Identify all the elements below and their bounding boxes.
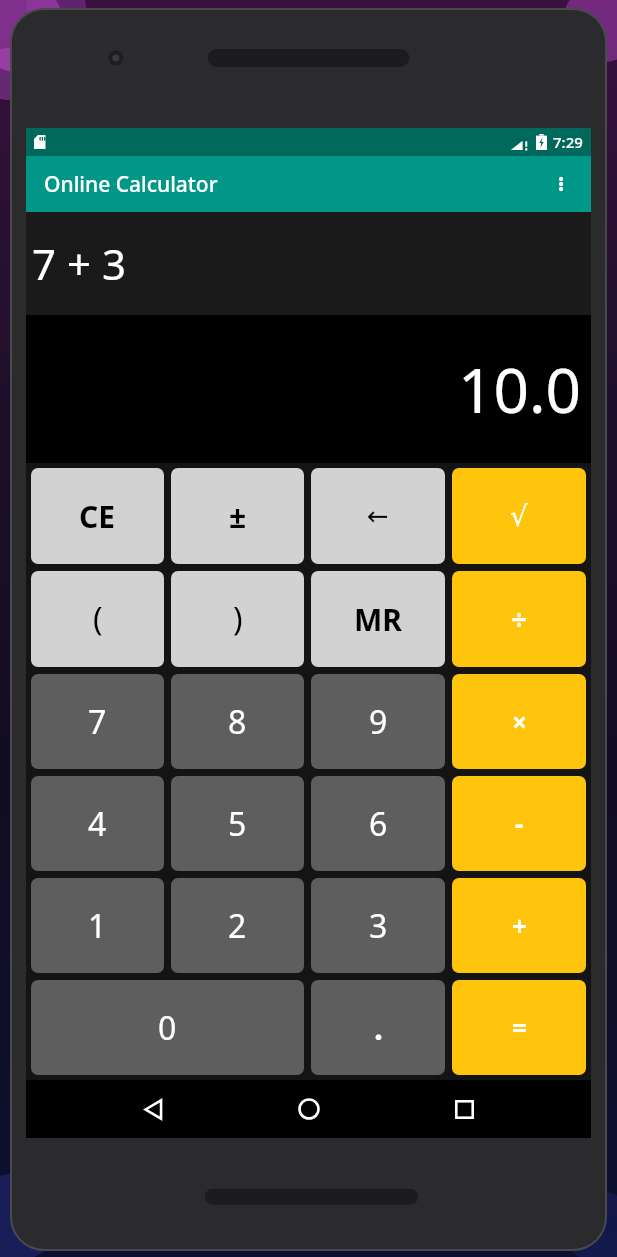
staticText: + [512, 908, 527, 943]
staticText: ÷ [511, 600, 528, 638]
staticText: 0 [158, 1006, 177, 1050]
staticText: MR [354, 599, 402, 640]
button[interactable]: 5 [171, 776, 304, 871]
button[interactable]: CE [31, 468, 164, 564]
staticText: 2 [228, 904, 247, 948]
button[interactable]: ← [311, 468, 445, 564]
button[interactable]: ( [31, 571, 164, 667]
button[interactable]: ) [171, 571, 304, 667]
staticText: ← [367, 501, 389, 531]
button[interactable]: 0 [31, 980, 304, 1075]
button[interactable]: 3 [311, 878, 445, 973]
button[interactable]: 1 [31, 878, 164, 973]
staticText: ± [229, 496, 247, 537]
staticText: 9 [369, 700, 388, 744]
staticText: Online Calculator [44, 170, 218, 199]
staticText: ( [93, 597, 103, 641]
button[interactable]: . [311, 980, 445, 1075]
staticText: 7:29 [553, 132, 583, 152]
staticText: 1 [88, 904, 107, 948]
button[interactable]: + [452, 878, 586, 973]
button[interactable]: × [452, 674, 586, 769]
staticText: ) [233, 597, 243, 641]
button[interactable]: ÷ [452, 571, 586, 667]
staticText: 7 [88, 700, 107, 744]
staticText: 5 [228, 802, 247, 846]
staticText: = [512, 1010, 527, 1045]
staticText: 3 [369, 904, 388, 948]
staticText: CE [79, 496, 116, 537]
staticText: - [515, 806, 524, 841]
button[interactable]: = [452, 980, 586, 1075]
staticText: 8 [228, 700, 247, 744]
button[interactable]: 6 [311, 776, 445, 871]
button[interactable]: More options [539, 162, 583, 206]
button[interactable]: 4 [31, 776, 164, 871]
button[interactable]: √ [452, 468, 586, 564]
button[interactable]: MR [311, 571, 445, 667]
button[interactable]: 8 [171, 674, 304, 769]
button[interactable]: 2 [171, 878, 304, 973]
button[interactable]: ± [171, 468, 304, 564]
button[interactable]: Recents [436, 1081, 492, 1137]
button[interactable]: Back [125, 1081, 181, 1137]
button[interactable]: 9 [311, 674, 445, 769]
staticText: 7 + 3 [32, 235, 126, 292]
button[interactable]: - [452, 776, 586, 871]
button[interactable]: 7 [31, 674, 164, 769]
staticText: × [512, 704, 527, 739]
button[interactable]: Home [281, 1081, 337, 1137]
staticText: . [374, 1006, 383, 1050]
staticText: 6 [369, 802, 388, 846]
staticText: 4 [88, 802, 107, 846]
staticText: 10.0 [457, 347, 581, 431]
staticText: √ [510, 500, 528, 533]
